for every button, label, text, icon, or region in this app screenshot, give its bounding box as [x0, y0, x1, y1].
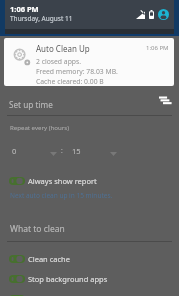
staticText: 1:06 PM — [10, 4, 39, 14]
button[interactable]: Sort — [154, 91, 174, 111]
staticText: 15 — [72, 146, 81, 156]
staticText: Stop background apps — [28, 274, 108, 284]
staticText: 0 — [12, 146, 17, 156]
staticText: Auto Clean Up — [36, 43, 90, 54]
staticText: Cache cleared: 0.00 B — [36, 77, 104, 86]
staticText: : — [61, 146, 63, 155]
staticText: Always show report — [28, 176, 97, 186]
staticText: Thursday, August 11 — [10, 14, 73, 23]
button[interactable]: Always show report — [0, 173, 179, 189]
staticText: Set up time — [9, 99, 53, 110]
staticText: What to clean — [10, 223, 65, 235]
staticText: Clean cache — [28, 254, 70, 264]
button[interactable]: 15 — [68, 144, 118, 158]
staticText: Freed memory: 78.03 MB. — [36, 67, 118, 76]
button[interactable]: Stop background apps — [0, 271, 179, 287]
staticText: Repeat every (hours) — [10, 123, 69, 131]
button[interactable]: Clean cache — [0, 251, 179, 267]
staticText: Next auto clean up in 15 minutes. — [10, 191, 113, 200]
button[interactable]: 0 — [8, 144, 58, 158]
button[interactable]: Auto Clean Up — [4, 38, 174, 86]
staticText: 1:06 PM — [146, 44, 169, 52]
staticText: 2 closed apps. — [36, 57, 82, 66]
button[interactable]: Clear clipboard — [0, 291, 179, 296]
